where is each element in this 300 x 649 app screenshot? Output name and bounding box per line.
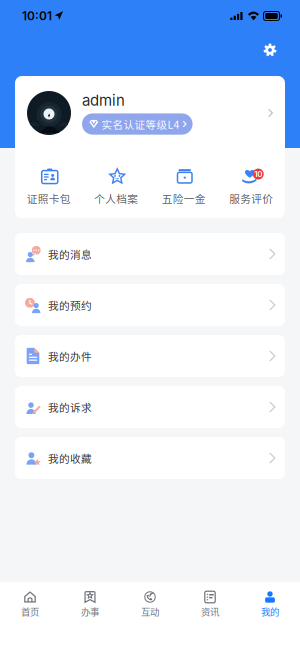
staticText: 我的收藏 (48, 450, 92, 466)
staticText: 我的预约 (48, 297, 92, 313)
staticText: 个人档案 (94, 191, 138, 206)
staticText: 服务评价 (229, 191, 273, 206)
staticText: 10 (254, 169, 262, 179)
staticText: 我的 (261, 604, 279, 618)
staticText: 我的诉求 (48, 399, 92, 415)
staticText: 资讯 (201, 604, 219, 618)
button[interactable]: 互动 (120, 591, 180, 618)
staticText: 互动 (141, 604, 159, 618)
button[interactable]: 五险一金 (150, 169, 217, 206)
button[interactable]: 实名认证等级L4 (82, 113, 193, 135)
button[interactable]: 10 (217, 169, 285, 206)
staticText: 首页 (21, 604, 39, 618)
button[interactable]: 我的 (240, 591, 300, 618)
button[interactable]: 我的办件 (15, 335, 285, 377)
button[interactable]: 首页 (0, 591, 60, 618)
staticText: 实名认证等级L4 (102, 116, 180, 132)
button[interactable]: 我的诉求 (15, 386, 285, 428)
button[interactable]: 办事 (60, 591, 120, 618)
staticText: 我的办件 (48, 348, 92, 364)
button[interactable]: 我的预约 (15, 284, 285, 326)
staticText: 办事 (81, 604, 99, 618)
button[interactable]: 我的收藏 (15, 437, 285, 479)
button[interactable]: 我的消息 (15, 233, 285, 275)
button[interactable]: 个人档案 (82, 169, 150, 206)
button[interactable]: 资讯 (180, 591, 240, 618)
staticText: admin (82, 91, 125, 109)
staticText: 证照卡包 (27, 191, 71, 206)
staticText: 我的消息 (48, 246, 92, 262)
button[interactable]: Settings (257, 37, 283, 63)
staticText: 10:01 (22, 9, 52, 23)
button[interactable]: 证照卡包 (15, 169, 82, 206)
staticText: 五险一金 (162, 191, 206, 206)
